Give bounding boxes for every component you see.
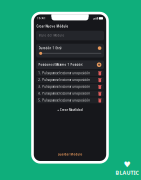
staticText: 3. Pulsa para seleccionar una posición: [38, 85, 90, 88]
staticText: 1. Pulsa para seleccionar una posición: [38, 71, 90, 75]
button[interactable]: 1. Pulsa para seleccionar una posición: [36, 70, 104, 76]
button[interactable]: Guardar Módulo: [34, 148, 106, 161]
staticText: 16:41: [37, 16, 46, 20]
button[interactable]: 3. Pulsa para seleccionar una posición: [36, 84, 104, 90]
staticText: 5. Pulsa para seleccionar una posición: [38, 99, 90, 102]
staticText: +: [57, 107, 59, 113]
button[interactable]: 2. Pulsa para seleccionar una posición: [36, 77, 104, 83]
staticText: Guardar Módulo: [57, 153, 82, 156]
staticText: Duración 1 (hrs): [39, 46, 62, 50]
staticText: Crear Nuevo Módulo: [36, 25, 68, 28]
staticText: Crear Movilidad: [60, 108, 83, 112]
button[interactable]: Añadir posición: [97, 62, 102, 67]
staticText: ♥: [123, 160, 130, 169]
staticText: BLAUTIC: [115, 169, 138, 176]
staticText: Posiciones (Máximo 1 Posición): [38, 63, 83, 66]
staticText: 2. Pulsa para seleccionar una posición: [38, 78, 90, 82]
button[interactable]: +: [36, 106, 104, 113]
button[interactable]: 5. Pulsa para seleccionar una posición: [36, 97, 104, 103]
staticText: Título del Módulo: [39, 34, 65, 37]
staticText: 4. Pulsa para seleccionar una posición: [38, 92, 90, 95]
button[interactable]: 4. Pulsa para seleccionar una posición: [36, 91, 104, 96]
